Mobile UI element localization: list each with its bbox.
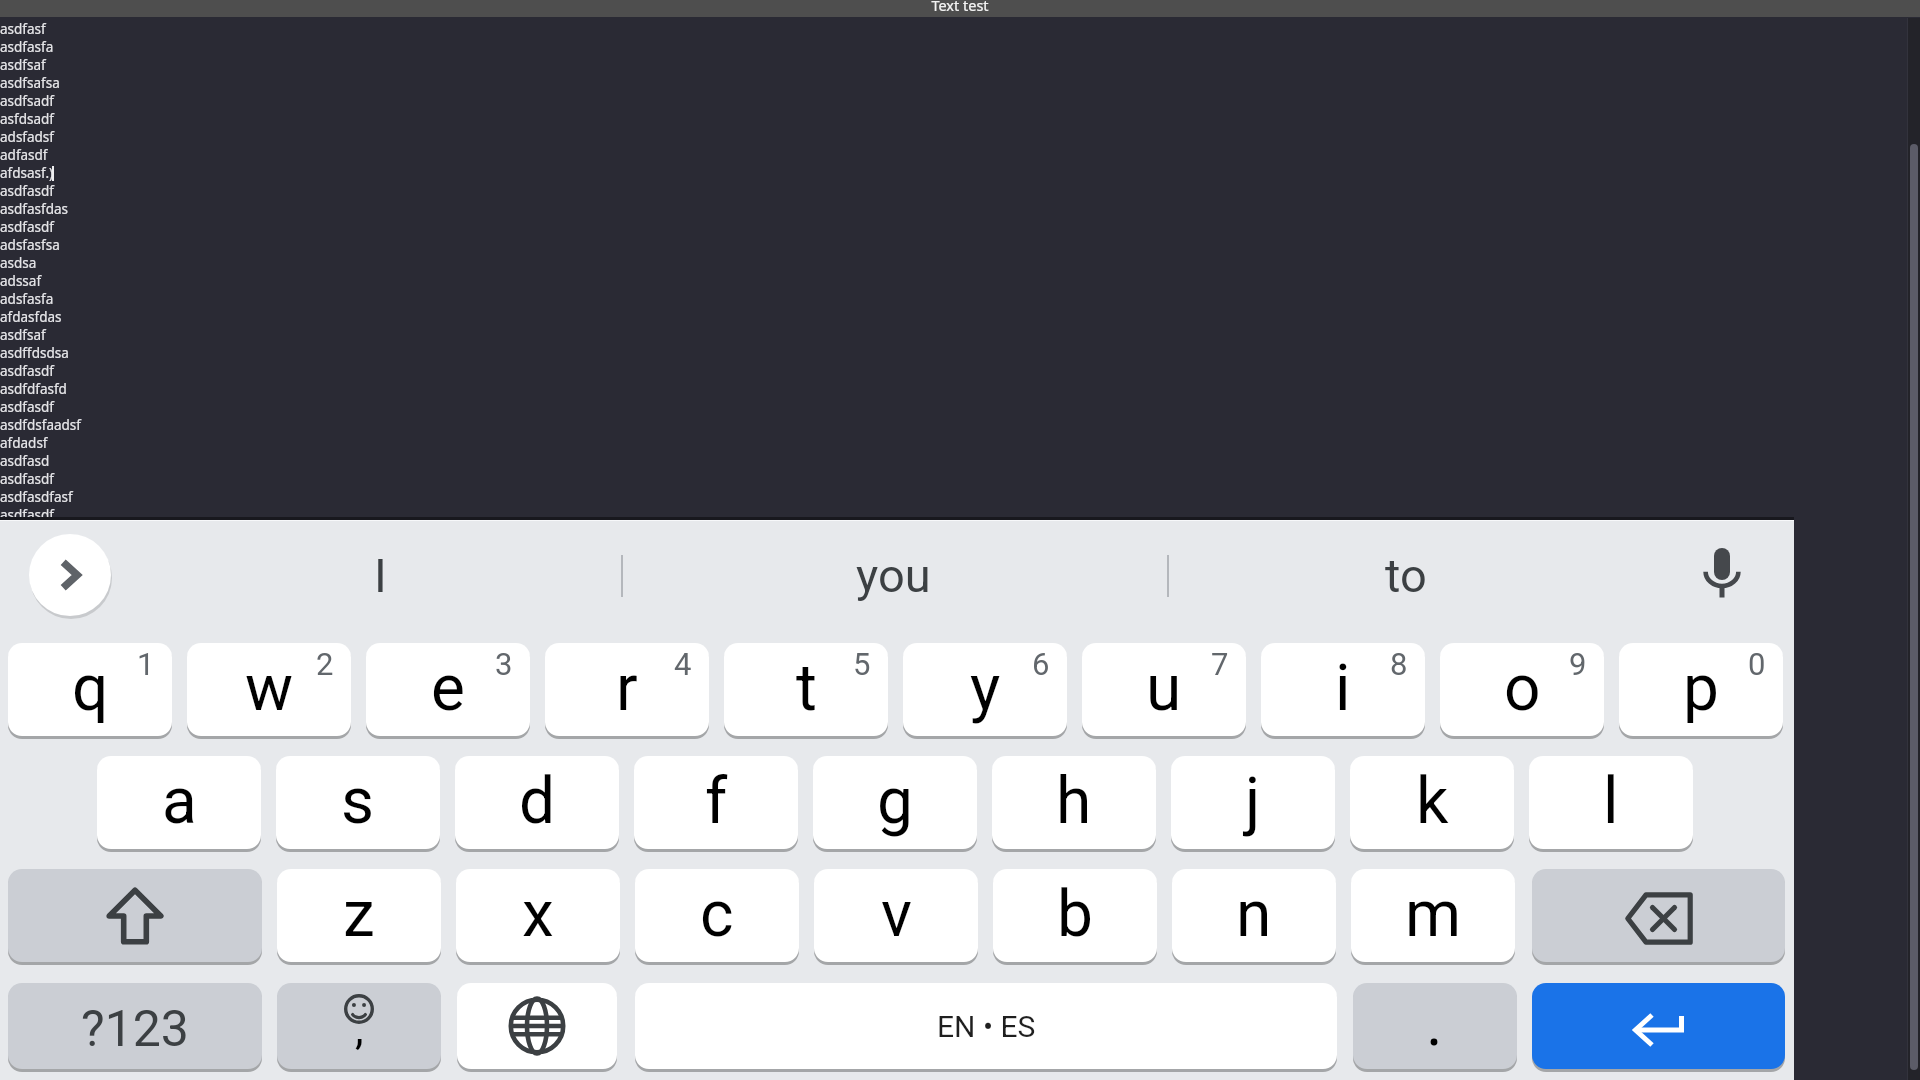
staticText: p bbox=[1683, 651, 1719, 726]
staticText: 6 bbox=[1032, 646, 1050, 682]
button[interactable]: Shift bbox=[8, 869, 262, 962]
staticText: asdfsaf bbox=[0, 56, 46, 74]
staticText: 2 bbox=[316, 646, 334, 682]
staticText: i bbox=[1335, 651, 1351, 726]
staticText: you bbox=[856, 548, 931, 603]
staticText: asdfasfa bbox=[0, 38, 54, 56]
staticText: adfasdf bbox=[0, 146, 48, 164]
staticText: asdfasdf bbox=[0, 470, 54, 488]
staticText: d bbox=[519, 764, 556, 839]
button[interactable]: e bbox=[366, 643, 530, 736]
staticText: adsfadsf bbox=[0, 128, 54, 146]
button[interactable]: Change keyboard language bbox=[457, 983, 617, 1069]
staticText: asdfasdf bbox=[0, 398, 54, 416]
button[interactable]: Expand toolbar bbox=[29, 534, 111, 616]
staticText: j bbox=[1245, 764, 1261, 839]
staticText: 5 bbox=[853, 646, 871, 682]
staticText: asdfsafsa bbox=[0, 74, 60, 92]
staticText: o bbox=[1504, 651, 1541, 726]
staticText: c bbox=[700, 877, 734, 952]
button[interactable]: Symbols bbox=[8, 983, 262, 1069]
button[interactable]: o bbox=[1440, 643, 1604, 736]
staticText: asdfasdfasf bbox=[0, 488, 73, 506]
button[interactable]: n bbox=[1172, 869, 1336, 962]
staticText: asdfsaf bbox=[0, 326, 46, 344]
staticText: asdfasdf bbox=[0, 362, 54, 380]
staticText: asdsa bbox=[0, 254, 37, 272]
staticText: u bbox=[1146, 651, 1182, 726]
staticText: s bbox=[341, 764, 375, 839]
staticText: asdfasdf bbox=[0, 218, 54, 236]
staticText: asdfsadf bbox=[0, 92, 54, 110]
button[interactable]: d bbox=[455, 756, 619, 849]
staticText: 0 bbox=[1748, 646, 1766, 682]
button[interactable]: m bbox=[1351, 869, 1515, 962]
staticText: asdfasd bbox=[0, 452, 50, 470]
button[interactable]: l bbox=[1529, 756, 1693, 849]
button[interactable]: I bbox=[220, 531, 540, 619]
button[interactable]: f bbox=[634, 756, 798, 849]
staticText: h bbox=[1056, 764, 1092, 839]
staticText: asfdsadf bbox=[0, 110, 54, 128]
staticText: k bbox=[1416, 764, 1449, 839]
staticText: q bbox=[72, 651, 109, 726]
button[interactable]: you bbox=[733, 531, 1053, 619]
staticText: b bbox=[1057, 877, 1093, 952]
button[interactable]: Enter bbox=[1532, 983, 1785, 1069]
button[interactable]: s bbox=[276, 756, 440, 849]
button[interactable]: w bbox=[187, 643, 351, 736]
button[interactable]: p bbox=[1619, 643, 1783, 736]
button[interactable]: v bbox=[814, 869, 978, 962]
staticText: asdfasdf bbox=[0, 506, 54, 524]
staticText: x bbox=[522, 877, 554, 952]
staticText: a bbox=[162, 764, 197, 839]
staticText: y bbox=[970, 651, 1001, 726]
button[interactable]: to bbox=[1246, 531, 1566, 619]
button[interactable]: t bbox=[724, 643, 888, 736]
staticText: adsfasfsa bbox=[0, 236, 60, 254]
button[interactable]: j bbox=[1171, 756, 1335, 849]
staticText: asdfdsfaadsf bbox=[0, 416, 81, 434]
staticText: asdfasf bbox=[0, 20, 46, 38]
staticText: asdfasfdas bbox=[0, 200, 69, 218]
staticText: asdffdsdsa bbox=[0, 344, 69, 362]
staticText: to bbox=[1385, 548, 1427, 603]
staticText: adsfasfa bbox=[0, 290, 54, 308]
staticText: afdsasf.) bbox=[0, 164, 54, 182]
button[interactable]: i bbox=[1261, 643, 1425, 736]
button[interactable]: g bbox=[813, 756, 977, 849]
staticText: Text test bbox=[0, 0, 1920, 15]
staticText: afdasfdas bbox=[0, 308, 62, 326]
staticText: 7 bbox=[1211, 646, 1229, 682]
staticText: t bbox=[796, 651, 817, 726]
button[interactable]: y bbox=[903, 643, 1067, 736]
button[interactable]: Emoji bbox=[277, 983, 441, 1069]
button[interactable]: r bbox=[545, 643, 709, 736]
staticText: f bbox=[705, 764, 728, 839]
button[interactable]: a bbox=[97, 756, 261, 849]
staticText: z bbox=[343, 877, 375, 952]
staticText: l bbox=[1603, 764, 1619, 839]
button[interactable]: Period bbox=[1353, 983, 1517, 1069]
button[interactable]: x bbox=[456, 869, 620, 962]
staticText: I bbox=[374, 548, 387, 603]
button[interactable]: q bbox=[8, 643, 172, 736]
staticText: w bbox=[245, 651, 294, 726]
button[interactable]: z bbox=[277, 869, 441, 962]
staticText: 1 bbox=[137, 646, 155, 682]
staticText: g bbox=[877, 764, 913, 839]
button[interactable]: b bbox=[993, 869, 1157, 962]
staticText: 8 bbox=[1390, 646, 1408, 682]
button[interactable]: u bbox=[1082, 643, 1246, 736]
staticText: afdadsf bbox=[0, 434, 48, 452]
staticText: n bbox=[1236, 877, 1272, 952]
button[interactable]: Space bbox=[635, 983, 1337, 1069]
button[interactable]: Voice input bbox=[1703, 548, 1741, 598]
button[interactable]: h bbox=[992, 756, 1156, 849]
button[interactable]: Backspace bbox=[1532, 869, 1785, 962]
staticText: e bbox=[431, 651, 465, 726]
button[interactable]: k bbox=[1350, 756, 1514, 849]
button[interactable]: c bbox=[635, 869, 799, 962]
staticText: asdfasdf bbox=[0, 182, 54, 200]
staticText: 3 bbox=[495, 646, 513, 682]
